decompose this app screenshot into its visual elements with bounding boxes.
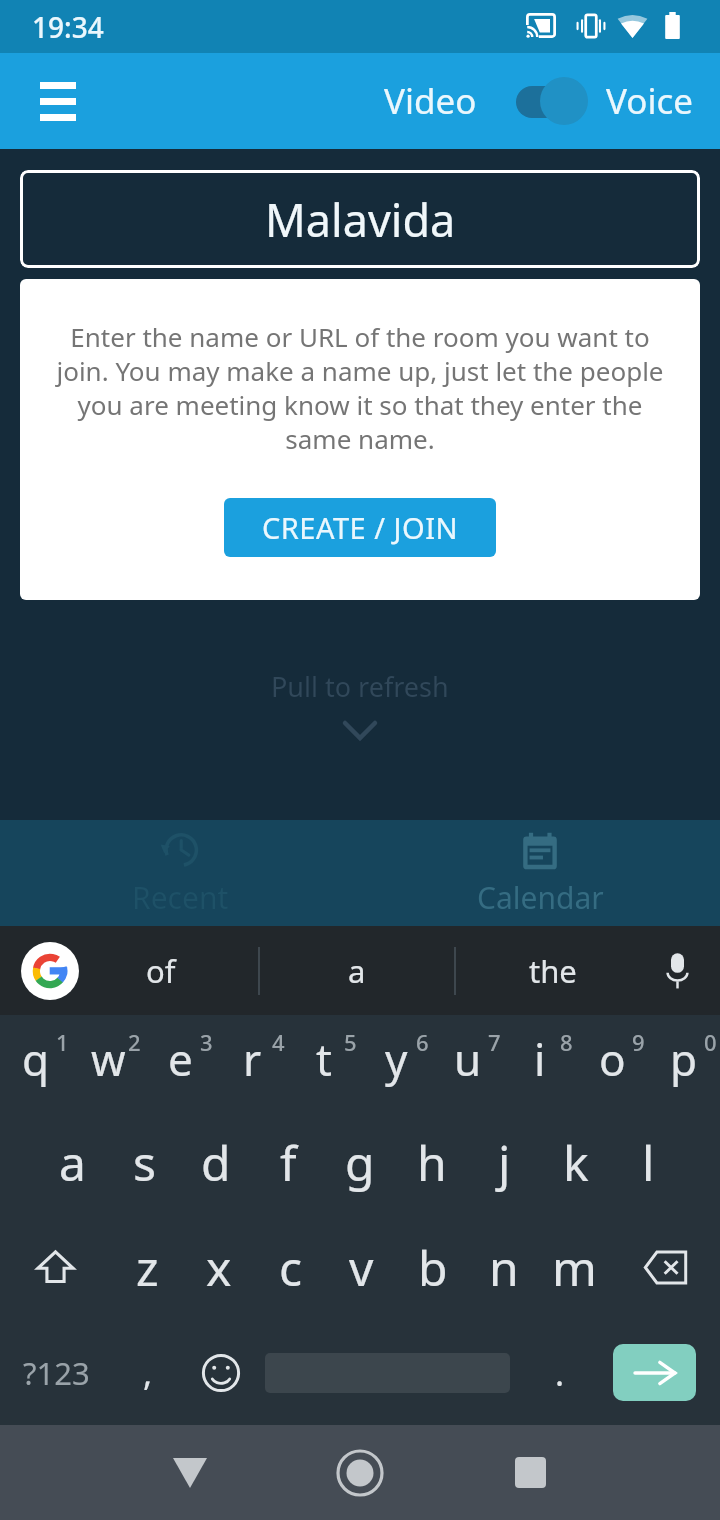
button[interactable]: z [111, 1215, 183, 1320]
staticText: x [206, 1235, 232, 1300]
staticText: Pull to refresh [271, 668, 449, 705]
staticText: 2 [128, 1027, 141, 1057]
button[interactable]: a [260, 926, 454, 1015]
staticText: j [498, 1130, 511, 1195]
staticText: Recent [132, 877, 229, 918]
button[interactable]: c [255, 1215, 326, 1320]
staticText: ?123 [23, 1352, 90, 1394]
staticText: i [534, 1029, 546, 1089]
button[interactable]: e [144, 1015, 216, 1110]
button[interactable]: t [288, 1015, 360, 1110]
staticText: Malavida [265, 189, 456, 250]
staticText: f [280, 1130, 297, 1195]
button[interactable]: n [468, 1215, 539, 1320]
button[interactable]: Voice input [634, 926, 720, 1015]
staticText: 5 [344, 1027, 357, 1057]
button[interactable]: Google search [20, 941, 80, 1001]
staticText: h [417, 1130, 447, 1195]
button[interactable]: f [252, 1110, 324, 1215]
button[interactable]: j [468, 1110, 540, 1215]
staticText: 4 [272, 1027, 285, 1057]
button[interactable]: w [72, 1015, 144, 1110]
button[interactable]: Open navigation menu [16, 59, 100, 143]
button[interactable]: u [432, 1015, 504, 1110]
staticText: , [143, 1350, 153, 1396]
staticText: the [529, 950, 577, 992]
button[interactable]: ?123 [0, 1320, 112, 1425]
button[interactable]: k [540, 1110, 612, 1215]
staticText: n [489, 1235, 519, 1300]
staticText: r [243, 1029, 262, 1089]
button[interactable]: p [648, 1015, 720, 1110]
staticText: Video [384, 77, 477, 125]
button[interactable]: a [36, 1110, 108, 1215]
staticText: 6 [416, 1027, 429, 1057]
staticText: Voice [606, 77, 694, 125]
button[interactable]: CREATE / JOIN [224, 498, 496, 557]
button[interactable]: Home [320, 1425, 400, 1520]
button[interactable]: Calendar [360, 820, 720, 926]
staticText: Enter the name or URL of the room you wa… [56, 319, 664, 456]
button[interactable]: Shift [0, 1215, 111, 1320]
staticText: s [133, 1130, 156, 1195]
button[interactable]: y [360, 1015, 432, 1110]
staticText: y [385, 1029, 408, 1089]
staticText: 8 [560, 1027, 573, 1057]
staticText: Calendar [477, 877, 604, 918]
button[interactable]: s [108, 1110, 180, 1215]
staticText: v [349, 1235, 374, 1300]
staticText: a [59, 1130, 86, 1195]
staticText: w [91, 1029, 126, 1089]
button[interactable]: the [456, 926, 650, 1015]
button[interactable]: Comma [112, 1320, 184, 1425]
button[interactable]: of [63, 926, 258, 1015]
button[interactable]: h [396, 1110, 468, 1215]
staticText: of [146, 950, 176, 992]
button[interactable]: i [504, 1015, 576, 1110]
button[interactable]: g [324, 1110, 396, 1215]
staticText: . [555, 1350, 565, 1396]
staticText: d [201, 1130, 231, 1195]
button[interactable]: Malavida [20, 170, 700, 268]
button[interactable]: Recent apps [490, 1425, 570, 1520]
button[interactable]: Space [258, 1320, 516, 1425]
button[interactable]: Period [516, 1320, 604, 1425]
button[interactable]: b [397, 1215, 468, 1320]
button[interactable]: Backspace [610, 1215, 720, 1320]
button[interactable]: r [216, 1015, 288, 1110]
button[interactable]: l [612, 1110, 684, 1215]
staticText: t [316, 1029, 332, 1089]
staticText: 1 [56, 1027, 69, 1057]
staticText: 0 [704, 1027, 717, 1057]
staticText: o [599, 1029, 626, 1089]
button[interactable]: Enter [604, 1320, 704, 1425]
staticText: g [345, 1130, 375, 1195]
button[interactable]: m [539, 1215, 610, 1320]
button[interactable]: o [576, 1015, 648, 1110]
staticText: 3 [200, 1027, 213, 1057]
staticText: CREATE / JOIN [262, 508, 459, 547]
button[interactable]: v [326, 1215, 397, 1320]
staticText: l [642, 1130, 655, 1195]
staticText: u [454, 1029, 482, 1089]
staticText: q [22, 1029, 50, 1089]
button[interactable]: Emoji [184, 1320, 258, 1425]
button[interactable]: Toggle video or voice call [516, 73, 588, 129]
staticText: 19:34 [32, 8, 104, 46]
staticText: p [670, 1029, 698, 1089]
staticText: k [563, 1130, 589, 1195]
button[interactable]: q [0, 1015, 72, 1110]
staticText: 7 [488, 1027, 501, 1057]
button[interactable]: d [180, 1110, 252, 1215]
staticText: e [168, 1029, 193, 1089]
staticText: 9 [632, 1027, 645, 1057]
staticText: b [418, 1235, 448, 1300]
button[interactable]: x [183, 1215, 255, 1320]
staticText: a [348, 950, 366, 992]
staticText: c [279, 1235, 303, 1300]
button[interactable]: Back [150, 1425, 230, 1520]
staticText: z [136, 1235, 159, 1300]
staticText: m [552, 1235, 597, 1300]
